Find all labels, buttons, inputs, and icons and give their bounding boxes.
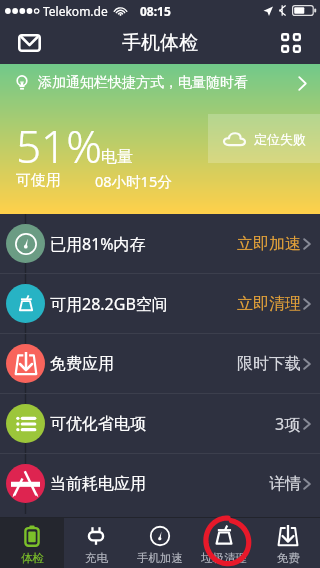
staticText: 手机加速	[137, 551, 183, 565]
button[interactable]: 当前耗电应用	[0, 454, 320, 513]
staticText: 详情	[269, 474, 301, 494]
button[interactable]: 定位失败	[208, 114, 320, 163]
staticText: 免费应用	[50, 354, 114, 374]
staticText: 立即清理	[237, 294, 301, 314]
button[interactable]: 免费应用	[0, 334, 320, 393]
staticText: 已用81%内存	[50, 233, 146, 255]
staticText: 可使用	[16, 171, 61, 190]
button[interactable]: 垃圾清理	[192, 517, 256, 568]
staticText: 垃圾清理	[201, 551, 247, 565]
button[interactable]: 体检	[0, 517, 64, 568]
staticText: 可用28.2GB空间	[50, 293, 168, 315]
staticText: 08:15	[140, 3, 171, 19]
button[interactable]: 已用81%内存	[0, 214, 320, 273]
button[interactable]: 手机加速	[128, 517, 192, 568]
staticText: 3项	[275, 413, 301, 435]
button[interactable]: Apps	[272, 24, 310, 62]
staticText: 体检	[21, 551, 44, 565]
button[interactable]: 可优化省电项	[0, 394, 320, 453]
staticText: 充电	[85, 551, 108, 565]
staticText: 08小时15分	[95, 171, 172, 191]
staticText: Telekom.de	[43, 3, 108, 19]
button[interactable]: 充电	[64, 517, 128, 568]
button[interactable]: 添加通知栏快捷方式，电量随时看	[0, 64, 320, 102]
staticText: 当前耗电应用	[50, 474, 146, 494]
staticText: 可优化省电项	[50, 414, 146, 434]
staticText: 添加通知栏快捷方式，电量随时看	[38, 74, 248, 92]
button[interactable]: 可用28.2GB空间	[0, 274, 320, 333]
staticText: 免费	[277, 551, 300, 565]
staticText: 立即加速	[237, 234, 301, 254]
button[interactable]: Messages	[10, 24, 48, 62]
staticText: 手机体检	[122, 31, 198, 55]
button[interactable]: 免费	[256, 517, 320, 568]
staticText: 电量	[101, 147, 133, 167]
staticText: 定位失败	[254, 131, 306, 147]
staticText: 51%	[16, 116, 102, 176]
staticText: 限时下载	[237, 354, 301, 374]
